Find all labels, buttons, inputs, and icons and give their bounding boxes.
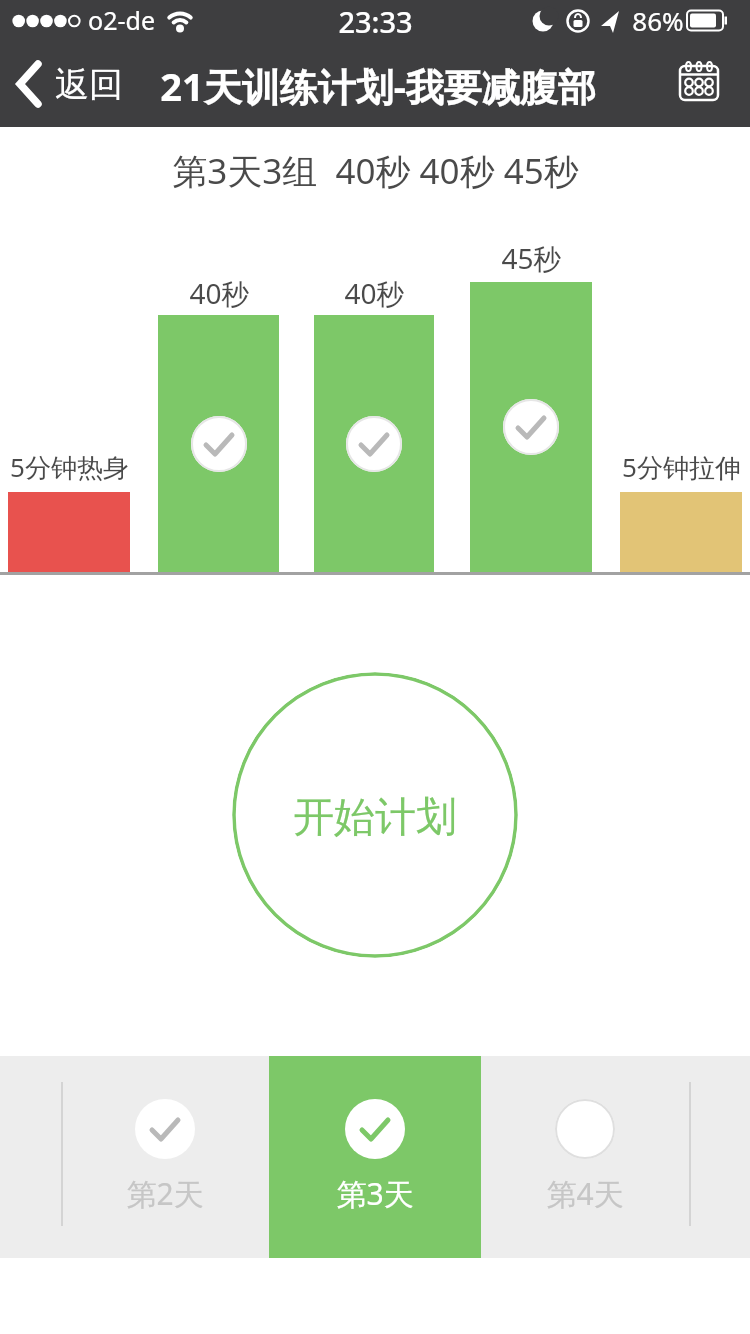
- staticText: 5分钟热身: [10, 449, 129, 485]
- staticText: 第2天: [126, 1173, 204, 1214]
- staticText: 86%: [632, 3, 684, 38]
- staticText: 5分钟拉伸: [622, 449, 741, 485]
- staticText: 开始计划: [293, 792, 457, 844]
- button[interactable]: [480, 1057, 690, 1258]
- staticText: 第4天: [546, 1173, 624, 1214]
- staticText: 第3天: [336, 1173, 414, 1214]
- staticText: 23:33: [338, 2, 413, 41]
- button[interactable]: 返回: [8, 48, 128, 120]
- button[interactable]: [60, 1057, 270, 1258]
- staticText: 40秒: [189, 274, 250, 312]
- staticText: 40秒: [344, 274, 405, 312]
- staticText: o2-de: [88, 3, 155, 37]
- button[interactable]: [270, 1057, 480, 1258]
- staticText: 45秒: [501, 239, 562, 277]
- button[interactable]: 开始计划: [232, 672, 518, 958]
- staticText: 返回: [55, 63, 123, 106]
- button[interactable]: [672, 55, 726, 111]
- staticText: 21天训练计划-我要减腹部: [160, 60, 596, 108]
- staticText: 第3天3组 40秒 40秒 45秒: [172, 147, 579, 195]
